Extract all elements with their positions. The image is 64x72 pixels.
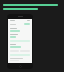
button[interactable]: Home bbox=[19, 65, 22, 68]
button[interactable]: Action bbox=[24, 23, 30, 25]
button[interactable] bbox=[10, 44, 30, 48]
button[interactable]: Phone preview bbox=[7, 14, 33, 69]
button[interactable] bbox=[10, 34, 30, 38]
button[interactable] bbox=[10, 28, 30, 32]
